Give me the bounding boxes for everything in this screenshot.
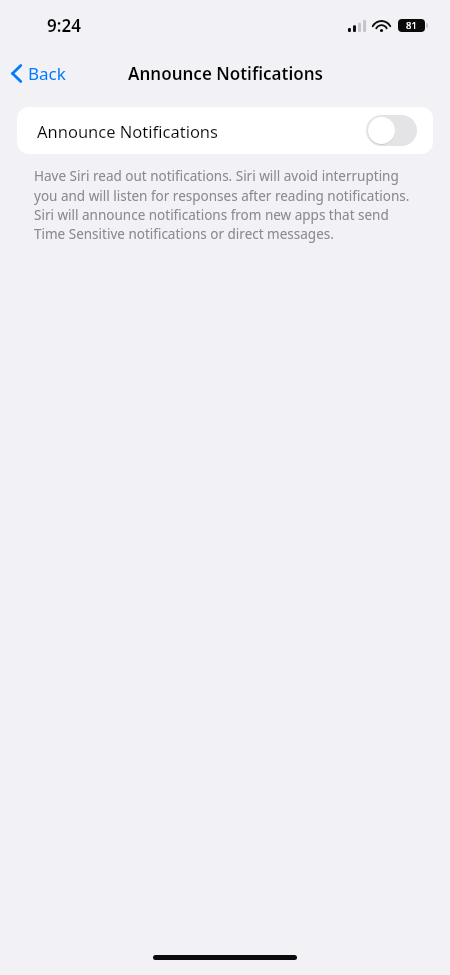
- button[interactable]: Back: [0, 56, 76, 91]
- button[interactable]: Announce Notifications toggle, off: [366, 115, 417, 146]
- staticText: Announce Notifications: [37, 120, 218, 142]
- staticText: 81: [406, 19, 417, 32]
- staticText: 9:24: [47, 14, 81, 37]
- button[interactable]: Announce Notifications: [17, 107, 433, 154]
- staticText: Announce Notifications: [128, 62, 323, 85]
- staticText: Have Siri read out notifications. Siri w…: [34, 167, 416, 243]
- staticText: Back: [28, 62, 66, 85]
